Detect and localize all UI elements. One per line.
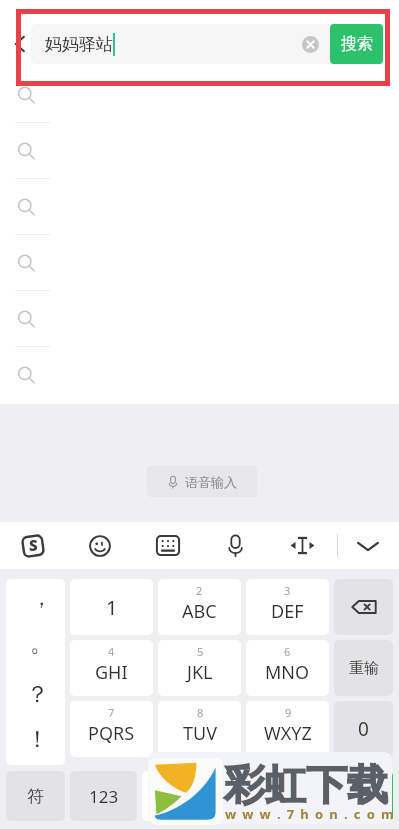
staticText: ？ bbox=[26, 680, 49, 709]
staticText: WXYZ bbox=[264, 721, 312, 746]
button[interactable]: 1 bbox=[70, 579, 153, 635]
staticText: PQRS bbox=[88, 721, 135, 746]
button[interactable]: Enter bbox=[334, 771, 393, 821]
button[interactable]: Move cursor bbox=[279, 522, 325, 569]
staticText: 4 bbox=[108, 644, 115, 659]
button[interactable]: Clear text bbox=[297, 31, 323, 57]
staticText: ！ bbox=[26, 725, 49, 754]
button[interactable]: Hide keyboard bbox=[345, 522, 391, 569]
staticText: 5 bbox=[197, 644, 204, 659]
button[interactable]: 重输 bbox=[334, 640, 393, 696]
staticText: 重输 bbox=[349, 659, 379, 678]
button[interactable]: 0 bbox=[334, 701, 393, 757]
button[interactable]: 4 bbox=[70, 640, 153, 696]
staticText: 3 bbox=[284, 583, 291, 598]
staticText: 1 bbox=[106, 594, 118, 621]
staticText: 彩虹下载 bbox=[224, 760, 388, 812]
button[interactable]: Back bbox=[3, 28, 35, 60]
staticText: TUV bbox=[183, 721, 217, 746]
staticText: 2 bbox=[196, 583, 203, 598]
button[interactable]: 语音输入 bbox=[147, 466, 257, 497]
staticText: 符 bbox=[27, 786, 44, 807]
staticText: MNO bbox=[265, 660, 310, 685]
button[interactable]: Space bbox=[142, 771, 329, 821]
button[interactable]: 123 bbox=[70, 771, 137, 821]
staticText: 0 bbox=[358, 716, 369, 742]
staticText: 搜索 bbox=[341, 34, 373, 54]
staticText: 8 bbox=[197, 705, 204, 720]
staticText: 9 bbox=[285, 705, 292, 720]
staticText: DEF bbox=[271, 599, 304, 624]
staticText: 7 bbox=[108, 705, 115, 720]
button[interactable]: Search suggestion bbox=[0, 67, 399, 123]
button[interactable]: 3 bbox=[246, 579, 329, 635]
button[interactable]: Backspace bbox=[334, 579, 393, 635]
staticText: w w w . 7 h o n . c o m bbox=[225, 805, 396, 823]
button[interactable]: 妈妈驿站 bbox=[31, 24, 330, 64]
staticText: ABC bbox=[182, 599, 217, 624]
button[interactable]: Emoji bbox=[77, 522, 123, 569]
button[interactable]: Keyboard layout bbox=[145, 522, 191, 569]
button[interactable]: Voice input bbox=[212, 522, 258, 569]
button[interactable]: 7 bbox=[70, 701, 153, 757]
button[interactable]: 9 bbox=[246, 701, 329, 757]
staticText: 6 bbox=[284, 644, 291, 659]
staticText: S bbox=[29, 535, 38, 555]
button[interactable]: 8 bbox=[158, 701, 241, 757]
button[interactable]: 符 bbox=[6, 771, 65, 821]
staticText: 。 bbox=[30, 629, 53, 658]
staticText: 123 bbox=[89, 785, 119, 808]
button[interactable]: 2 bbox=[158, 579, 241, 635]
staticText: ， bbox=[31, 585, 52, 611]
button[interactable]: 5 bbox=[158, 640, 241, 696]
staticText: GHI bbox=[95, 660, 128, 685]
staticText: JKL bbox=[187, 660, 213, 685]
button[interactable]: 搜索 bbox=[330, 24, 383, 64]
button[interactable]: ， bbox=[6, 579, 65, 765]
button[interactable]: 6 bbox=[246, 640, 329, 696]
staticText: 妈妈驿站 bbox=[45, 34, 113, 55]
staticText: 语音输入 bbox=[185, 474, 237, 490]
button[interactable]: Sogou input method bbox=[10, 522, 56, 569]
